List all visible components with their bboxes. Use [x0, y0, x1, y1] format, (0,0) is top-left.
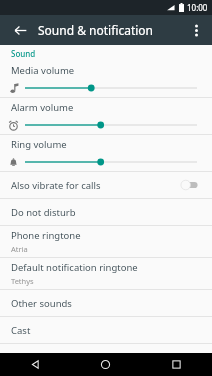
button[interactable]: Other sounds	[0, 290, 212, 316]
button[interactable]: Home	[70, 353, 141, 376]
staticText: Tethys	[11, 276, 34, 286]
staticText: Sound & notification	[38, 22, 154, 38]
staticText: Cast	[11, 324, 31, 337]
button[interactable]: Alarm volume	[0, 98, 212, 134]
staticText: Do not disturb	[11, 206, 76, 219]
button[interactable]: Phone ringtone	[0, 226, 212, 257]
button[interactable]: Do not disturb	[0, 199, 212, 225]
staticText: Other sounds	[11, 297, 72, 310]
staticText: Also vibrate for calls	[11, 179, 180, 192]
button[interactable]: Media volume	[0, 61, 212, 97]
staticText: Ring volume	[11, 138, 67, 151]
button[interactable]: Back	[0, 353, 70, 376]
staticText: Phone ringtone	[11, 229, 81, 242]
button[interactable]: Cast	[0, 317, 212, 343]
staticText: Media volume	[11, 64, 75, 77]
staticText: 10:00	[187, 2, 208, 13]
button[interactable]: More options	[184, 18, 208, 42]
button[interactable]: Back	[8, 18, 32, 42]
staticText: Alarm volume	[11, 101, 74, 114]
button[interactable]: Default notification ringtone	[0, 258, 212, 289]
staticText: Atria	[11, 244, 28, 254]
button[interactable]: Recent apps	[141, 353, 212, 376]
button[interactable]: Also vibrate for calls	[0, 172, 212, 198]
staticText: Default notification ringtone	[11, 261, 138, 274]
staticText: Sound	[11, 48, 36, 59]
button[interactable]: Ring volume	[0, 135, 212, 171]
